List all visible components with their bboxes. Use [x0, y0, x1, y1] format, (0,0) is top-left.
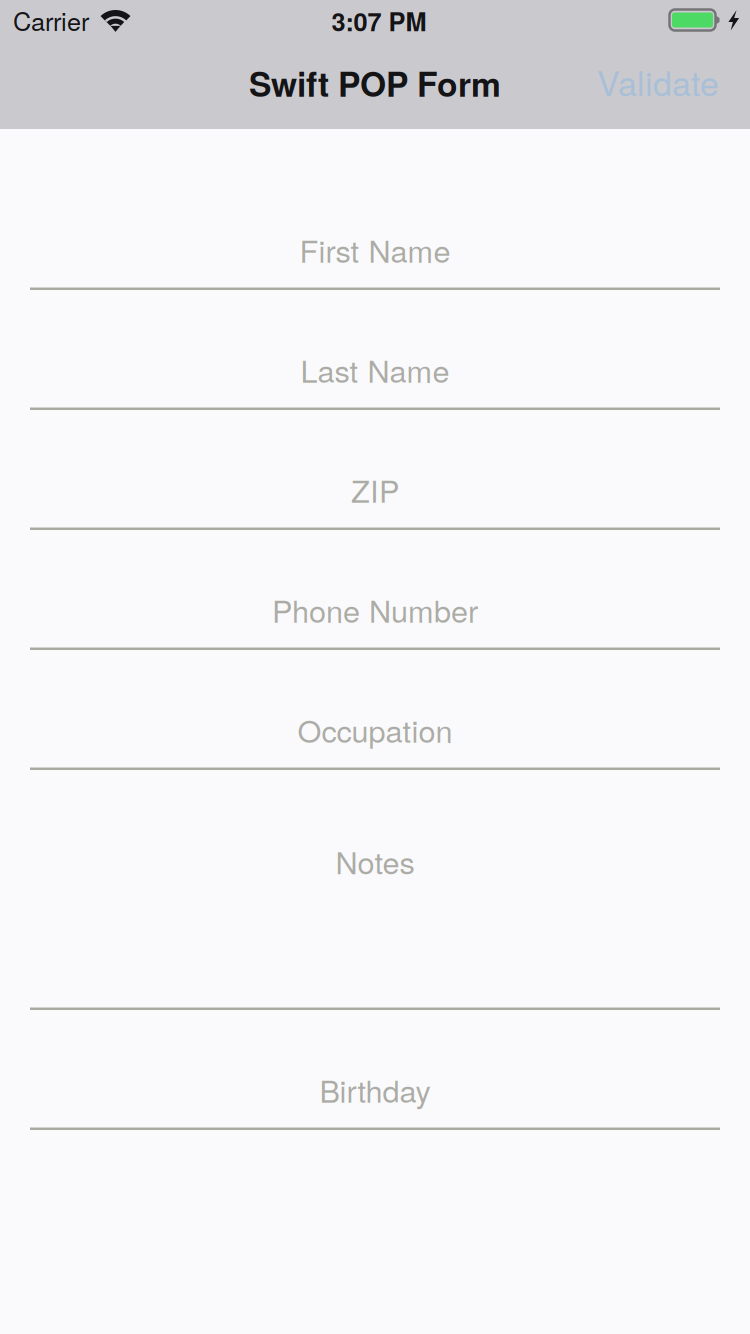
button[interactable]: Phone Number [0, 530, 750, 650]
button[interactable]: First Name [0, 129, 750, 290]
button[interactable]: Notes [0, 770, 750, 1010]
staticText: First Name [299, 228, 450, 271]
staticText: Last Name [300, 348, 449, 391]
staticText: Validate [597, 57, 719, 106]
staticText: Notes [335, 839, 414, 883]
staticText: 3:07 PM [331, 3, 426, 39]
button[interactable]: Validate [581, 46, 735, 123]
staticText: Carrier [13, 2, 89, 38]
button[interactable]: Birthday [0, 1010, 750, 1130]
staticText: Phone Number [272, 588, 478, 631]
button[interactable]: Last Name [0, 290, 750, 410]
staticText: Occupation [297, 708, 452, 751]
staticText: Swift POP Form [249, 59, 501, 107]
button[interactable]: Occupation [0, 650, 750, 770]
staticText: ZIP [351, 468, 399, 511]
button[interactable]: ZIP [0, 410, 750, 530]
staticText: Birthday [319, 1068, 430, 1111]
